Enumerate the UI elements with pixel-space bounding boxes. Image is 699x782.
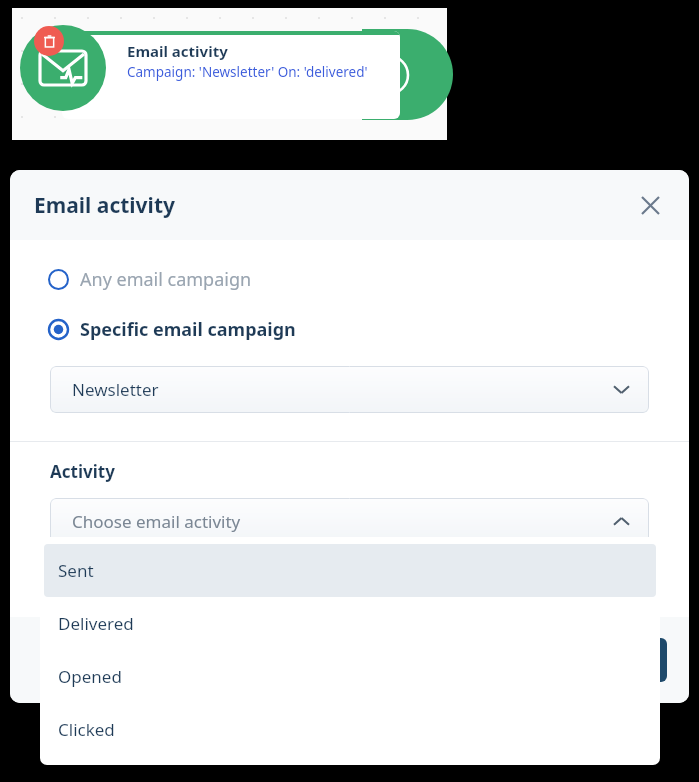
button[interactable]: Next step bbox=[370, 56, 408, 94]
staticText: Sent bbox=[58, 559, 94, 582]
staticText: Campaign: 'Newsletter' On: 'delivered' bbox=[127, 63, 368, 81]
button[interactable]: Save bbox=[571, 638, 667, 682]
button[interactable]: Email activity icon bbox=[20, 25, 106, 111]
staticText: Newsletter bbox=[72, 378, 159, 401]
staticText: Opened bbox=[58, 665, 122, 688]
button[interactable]: Choose email activity bbox=[50, 498, 649, 545]
button[interactable]: Delivered bbox=[44, 597, 656, 650]
staticText: Clicked bbox=[58, 718, 115, 741]
button[interactable]: Specific email campaign bbox=[10, 312, 689, 346]
staticText: Specific email campaign bbox=[80, 317, 296, 342]
staticText: Delivered bbox=[58, 612, 134, 635]
button[interactable]: Delete bbox=[34, 26, 64, 56]
staticText: Activity bbox=[50, 460, 115, 483]
staticText: Email activity bbox=[34, 191, 175, 220]
button[interactable]: Opened bbox=[44, 650, 656, 703]
button[interactable]: Any email campaign bbox=[10, 262, 689, 296]
staticText: Choose email activity bbox=[72, 510, 241, 533]
button[interactable]: Sent bbox=[44, 544, 656, 597]
staticText: Any email campaign bbox=[80, 267, 252, 292]
button[interactable]: Close bbox=[633, 188, 667, 222]
button[interactable]: Select campaign bbox=[50, 366, 649, 413]
staticText: Email activity bbox=[127, 41, 228, 61]
button[interactable]: Clicked bbox=[44, 703, 656, 756]
